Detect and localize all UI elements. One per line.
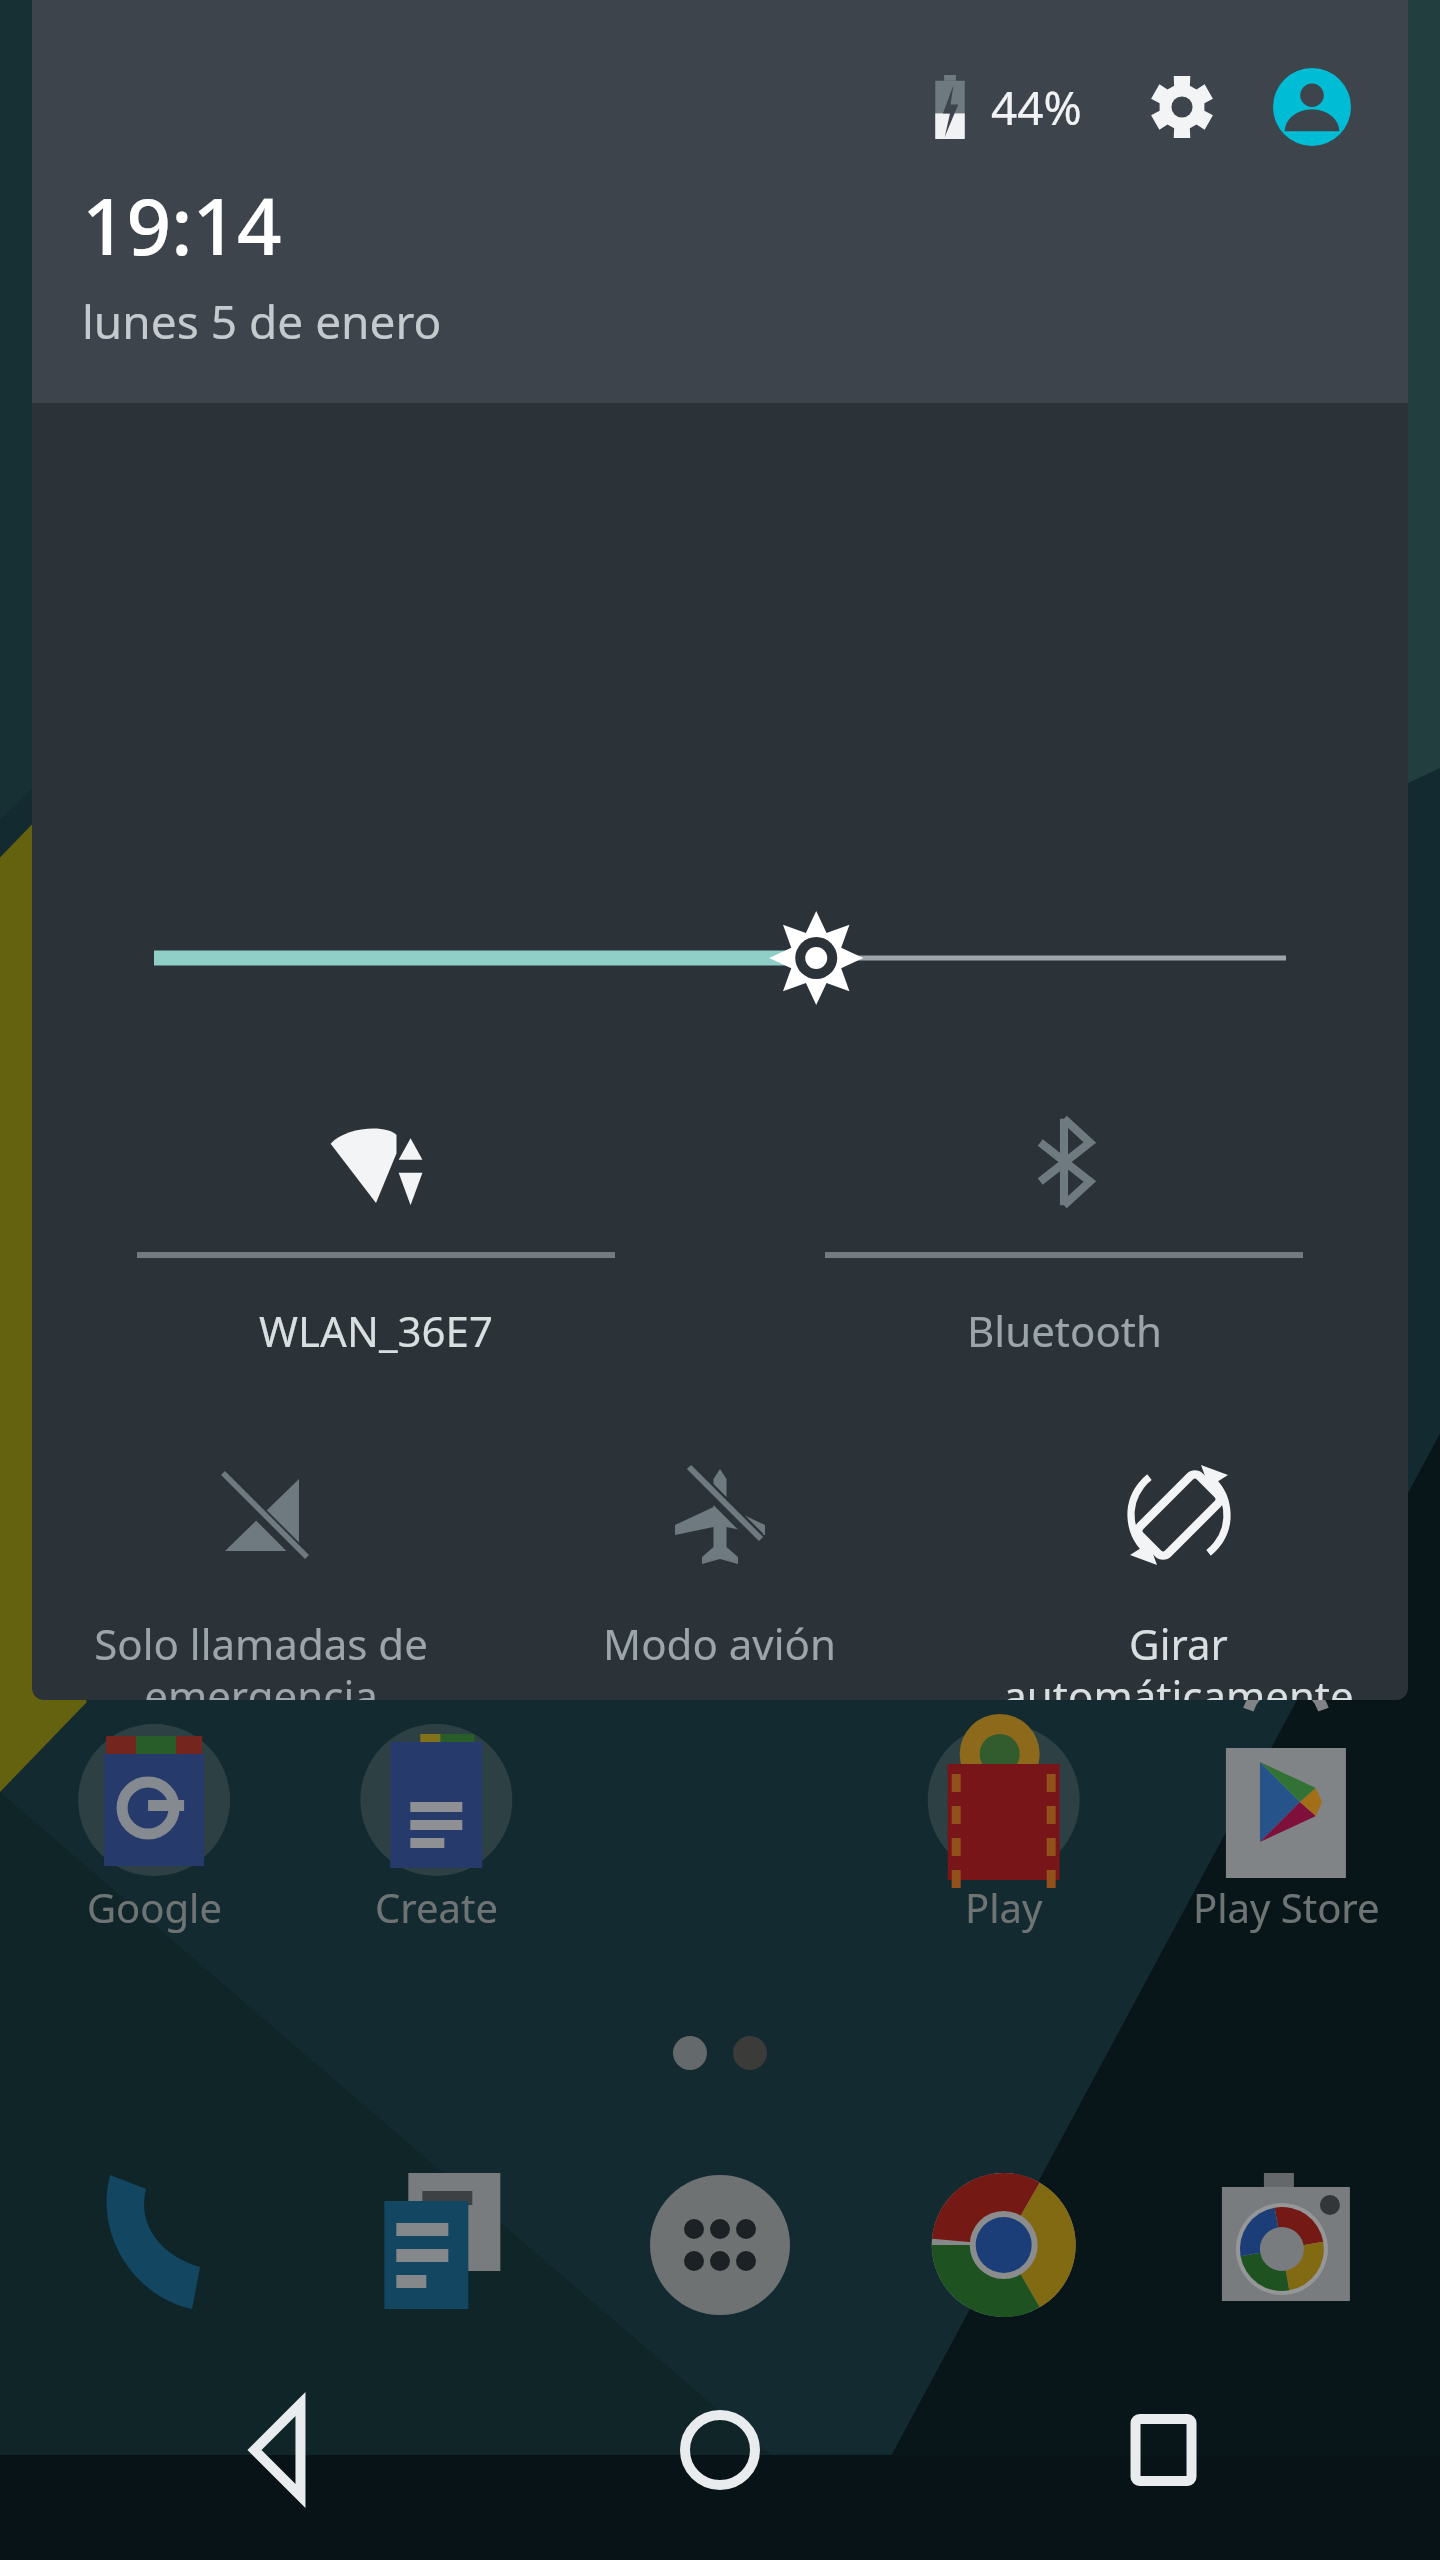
button[interactable]: WLAN_36E7 [32, 1108, 720, 1359]
button[interactable]: Bluetooth [720, 1108, 1408, 1359]
button[interactable]: Modo avión [490, 1465, 949, 1672]
button[interactable]: Create [306, 1880, 566, 2060]
button[interactable]: Home [630, 2380, 810, 2560]
staticText: Create [375, 1880, 498, 1934]
button[interactable]: Solo llamadas de emergencia [32, 1465, 490, 1700]
staticText: Modo avión [603, 1615, 836, 1672]
staticText: 19:14 [82, 172, 282, 278]
button[interactable]: Google [24, 1880, 284, 2060]
staticText: Google [87, 1880, 222, 1934]
staticText: Play [965, 1880, 1043, 1934]
staticText: Bluetooth [967, 1302, 1162, 1359]
button[interactable]: Back [180, 2380, 360, 2560]
staticText: Girar automáticamente [1003, 1615, 1354, 1700]
staticText: Play Store [1193, 1880, 1380, 1934]
staticText: 44% [991, 76, 1082, 139]
staticText: Solo llamadas de emergencia [94, 1615, 428, 1700]
button[interactable]: Recent apps [1074, 2380, 1254, 2560]
button[interactable]: Brightness [32, 893, 1408, 1023]
button[interactable]: User profile [1264, 59, 1360, 155]
button[interactable]: Battery 44 percent charging [927, 75, 1082, 139]
button[interactable]: Girar automáticamente [949, 1465, 1408, 1700]
staticText: WLAN_36E7 [259, 1302, 493, 1359]
button[interactable]: Play [874, 1880, 1134, 2060]
button[interactable]: 19:14 [82, 172, 442, 353]
staticText: lunes 5 de enero [82, 290, 442, 353]
button[interactable]: Settings [1134, 59, 1230, 155]
button[interactable]: Play Store [1156, 1880, 1416, 2060]
